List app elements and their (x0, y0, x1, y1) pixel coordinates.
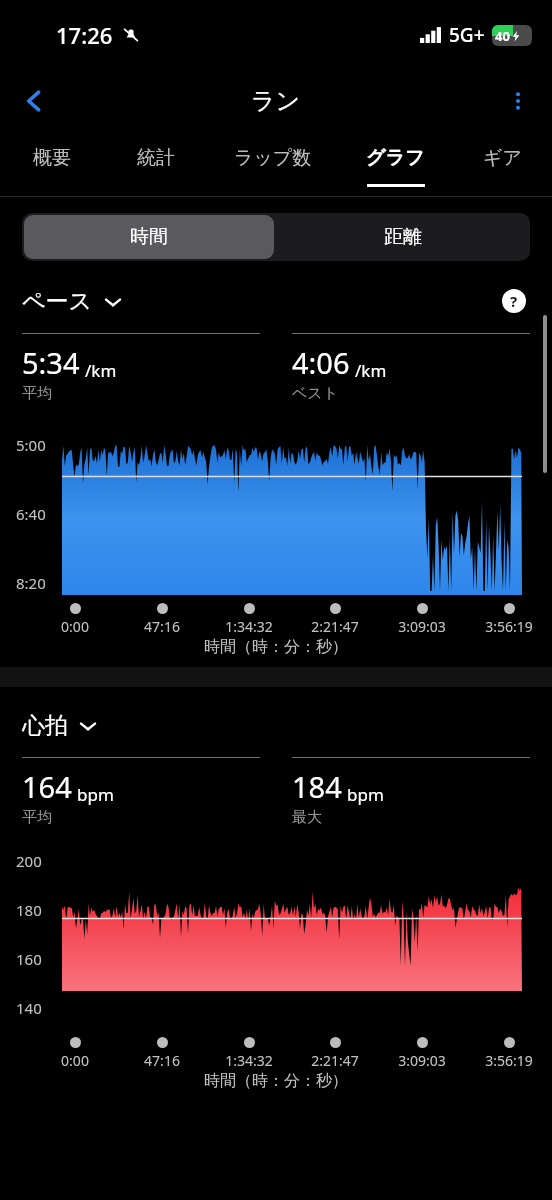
button[interactable]: 心拍 (22, 711, 98, 740)
staticText: 160 (16, 949, 42, 969)
button[interactable]: 時間 (24, 215, 274, 259)
staticText: 6:40 (16, 504, 46, 524)
staticText: 時間（時：分：秒） (204, 1071, 348, 1091)
staticText: 1:34:32 (225, 617, 273, 636)
staticText: 3:56:19 (485, 1051, 533, 1070)
button[interactable]: ラップ数 (208, 132, 338, 196)
staticText: 3:56:19 (485, 617, 533, 636)
staticText: 5:00 (16, 435, 46, 455)
staticText: グラフ (366, 146, 425, 170)
staticText: 5:34 (22, 343, 80, 382)
staticText: ? (510, 291, 518, 311)
staticText: 2:21:47 (311, 1051, 359, 1070)
staticText: bpm (77, 783, 114, 806)
staticText: 164 (22, 767, 72, 806)
staticText: 3:09:03 (398, 1051, 446, 1070)
staticText: 47:16 (144, 1051, 180, 1070)
staticText: 47:16 (144, 617, 180, 636)
button[interactable]: グラフ (338, 132, 453, 196)
staticText: 距離 (384, 225, 422, 249)
staticText: 平均 (22, 384, 52, 403)
staticText: 1:34:32 (225, 1051, 273, 1070)
staticText: ラップ数 (234, 146, 312, 170)
staticText: /km (85, 359, 117, 382)
staticText: ペース (22, 287, 93, 316)
staticText: 時間（時：分：秒） (204, 637, 348, 657)
staticText: bpm (347, 783, 384, 806)
staticText: ベスト (292, 384, 339, 403)
staticText: 概要 (33, 146, 71, 170)
staticText: 140 (16, 998, 42, 1018)
staticText: 2:21:47 (311, 617, 359, 636)
staticText: 統計 (137, 146, 175, 170)
staticText: 5G+ (449, 22, 485, 48)
staticText: 最大 (292, 808, 322, 827)
staticText: 平均 (22, 808, 52, 827)
staticText: 17:26 (56, 20, 113, 50)
staticText: 3:09:03 (398, 617, 446, 636)
button[interactable]: Help (498, 285, 530, 317)
staticText: /km (355, 359, 387, 382)
staticText: ラン (251, 86, 301, 116)
staticText: 0:00 (61, 617, 89, 636)
staticText: 4:06 (292, 343, 350, 382)
staticText: 0:00 (61, 1051, 89, 1070)
button[interactable]: 統計 (104, 132, 208, 196)
button[interactable]: More options (492, 75, 544, 127)
staticText: 40 (495, 27, 510, 45)
staticText: 200 (16, 851, 42, 871)
staticText: 時間 (130, 225, 168, 249)
staticText: 180 (16, 900, 42, 920)
button[interactable]: 概要 (0, 132, 104, 196)
staticText: ギア (483, 146, 522, 170)
staticText: 184 (292, 767, 342, 806)
button[interactable]: ギア (453, 132, 552, 196)
button[interactable]: 距離 (276, 213, 530, 261)
button[interactable]: Back (8, 75, 60, 127)
button[interactable]: ペース (22, 287, 123, 316)
staticText: 8:20 (16, 573, 46, 593)
staticText: 心拍 (22, 711, 68, 740)
